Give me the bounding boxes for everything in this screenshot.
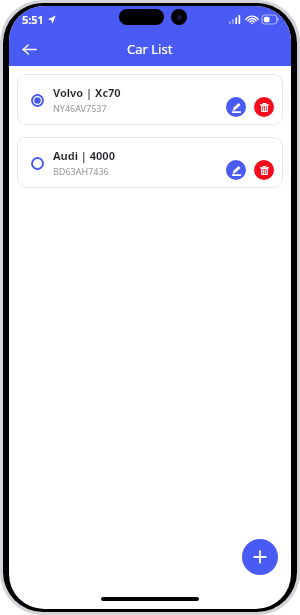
button[interactable]: Delete Audi | 4000 <box>254 160 274 180</box>
staticText: BD63AH7436 <box>53 165 109 177</box>
button[interactable]: Select Audi | 4000 <box>26 152 48 174</box>
button[interactable]: Select Volvo | Xc70 <box>17 74 283 125</box>
staticText: Volvo | Xc70 <box>53 85 121 100</box>
staticText: NY46AV7537 <box>53 102 107 114</box>
staticText: Audi | 4000 <box>53 148 115 163</box>
button[interactable]: Add car <box>242 539 278 575</box>
button[interactable]: Edit Audi | 4000 <box>226 160 246 180</box>
staticText: Car List <box>127 40 173 58</box>
button[interactable]: Edit Volvo | Xc70 <box>226 97 246 117</box>
button[interactable]: Back <box>14 34 44 64</box>
staticText: 5:51 <box>22 12 44 27</box>
button[interactable]: Select Volvo | Xc70 <box>26 89 48 111</box>
button[interactable]: Delete Volvo | Xc70 <box>254 97 274 117</box>
button[interactable]: Select Audi | 4000 <box>17 137 283 188</box>
